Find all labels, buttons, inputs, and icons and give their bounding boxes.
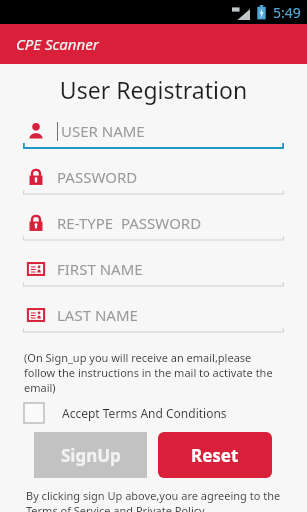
other: RE-TYPE PASSWORD bbox=[23, 212, 49, 234]
button[interactable]: USER NAME bbox=[23, 114, 284, 160]
staticText: Accept Terms And Conditions bbox=[62, 405, 227, 421]
staticText: LAST NAME bbox=[57, 305, 138, 325]
other: FIRST NAME bbox=[23, 258, 49, 280]
staticText: 5:49 bbox=[273, 3, 301, 22]
staticText: FIRST NAME bbox=[57, 259, 143, 279]
staticText: RE-TYPE PASSWORD bbox=[57, 213, 202, 233]
staticText: SignUp bbox=[61, 444, 121, 467]
staticText: By clicking sign Up above,you are agreei… bbox=[26, 488, 283, 512]
other: USER NAME bbox=[23, 120, 49, 142]
button[interactable]: FIRST NAME bbox=[23, 252, 284, 298]
staticText: CPE Scanner bbox=[16, 34, 99, 54]
button[interactable]: PASSWORD bbox=[23, 160, 284, 206]
staticText: (On Sign_up you will receive an email,pl… bbox=[24, 350, 285, 395]
button[interactable]: RE-TYPE PASSWORD bbox=[23, 206, 284, 252]
staticText: User Registration bbox=[0, 74, 307, 105]
button[interactable]: Accept Terms And Conditions bbox=[24, 403, 307, 423]
button[interactable]: CPE Scanner bbox=[0, 24, 307, 64]
button[interactable]: Reset bbox=[158, 432, 272, 478]
other: LAST NAME bbox=[23, 304, 49, 326]
staticText: PASSWORD bbox=[57, 167, 138, 187]
staticText: USER NAME bbox=[61, 121, 145, 141]
button[interactable]: SignUp bbox=[34, 432, 147, 478]
other: PASSWORD bbox=[23, 166, 49, 188]
button[interactable]: LAST NAME bbox=[23, 298, 284, 344]
staticText: Reset bbox=[191, 444, 239, 467]
